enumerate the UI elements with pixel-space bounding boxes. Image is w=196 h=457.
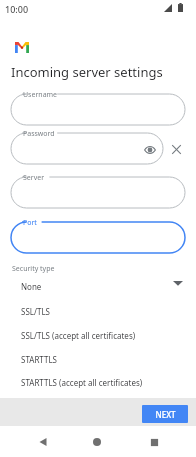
button[interactable]: Back — [38, 437, 48, 447]
button[interactable]: Recent apps — [150, 438, 159, 447]
staticText: 10:00 — [5, 3, 29, 15]
staticText: NEXT — [155, 409, 176, 420]
button[interactable]: Security type dropdown — [173, 279, 183, 287]
button[interactable]: Password — [11, 133, 163, 164]
button[interactable]: SSL/TLS (accept all certificates) — [10, 323, 165, 347]
button[interactable]: NEXT — [142, 405, 188, 423]
button[interactable]: Clear password — [170, 143, 183, 156]
button[interactable]: SSL/TLS — [10, 299, 165, 323]
button[interactable]: Show password — [144, 144, 156, 156]
staticText: STARTTLS (accept all certificates) — [21, 377, 143, 388]
staticText: Password — [23, 129, 55, 139]
button[interactable]: None — [10, 273, 165, 299]
button[interactable]: Server — [11, 177, 185, 208]
staticText: SSL/TLS (accept all certificates) — [21, 330, 136, 341]
button[interactable]: STARTTLS — [10, 347, 165, 371]
staticText: Incoming server settings — [11, 63, 163, 81]
staticText: Username — [23, 90, 58, 100]
button[interactable]: Port — [11, 222, 185, 253]
staticText: STARTTLS — [21, 354, 58, 365]
staticText: Server — [23, 173, 45, 183]
staticText: Security type — [12, 264, 55, 274]
button[interactable]: Home — [92, 437, 102, 447]
button[interactable]: STARTTLS (accept all certificates) — [10, 371, 165, 394]
staticText: Port — [23, 218, 37, 228]
button[interactable]: Username — [11, 94, 185, 125]
staticText: None — [21, 281, 42, 292]
staticText: SSL/TLS — [21, 306, 50, 317]
